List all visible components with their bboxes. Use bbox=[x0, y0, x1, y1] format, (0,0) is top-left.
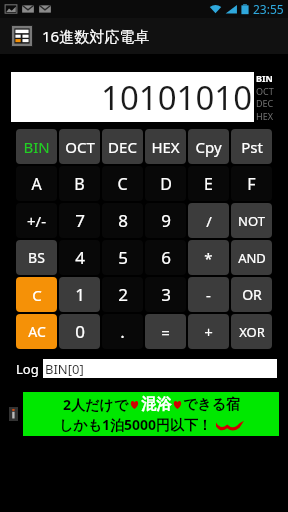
button[interactable]: C bbox=[102, 166, 143, 201]
button[interactable]: Pst bbox=[231, 129, 272, 164]
staticText: 10101010 bbox=[101, 75, 253, 120]
staticText: XOR bbox=[239, 323, 265, 341]
button[interactable]: 8 bbox=[102, 203, 143, 238]
staticText: 9 bbox=[161, 209, 171, 232]
staticText: = bbox=[161, 322, 170, 342]
staticText: HEX bbox=[151, 137, 180, 157]
button[interactable]: BIN[0] bbox=[43, 359, 277, 378]
button[interactable]: D bbox=[145, 166, 186, 201]
staticText: 16進数対応電卓 bbox=[42, 26, 150, 46]
staticText: Log bbox=[16, 360, 39, 378]
staticText: - bbox=[206, 285, 211, 305]
button[interactable]: HEX bbox=[145, 129, 186, 164]
staticText: できる宿 bbox=[183, 396, 240, 414]
button[interactable]: . bbox=[102, 314, 143, 349]
staticText: F bbox=[247, 173, 256, 195]
staticText: . bbox=[120, 320, 125, 343]
button[interactable]: AC bbox=[16, 314, 57, 349]
staticText: OR bbox=[242, 285, 262, 304]
staticText: +/- bbox=[27, 211, 46, 231]
button[interactable]: E bbox=[188, 166, 229, 201]
button[interactable]: 9 bbox=[145, 203, 186, 238]
staticText: + bbox=[204, 322, 213, 342]
button[interactable]: / bbox=[188, 203, 229, 238]
staticText: 7 bbox=[75, 209, 85, 232]
staticText: 3 bbox=[161, 283, 171, 306]
button[interactable]: XOR bbox=[231, 314, 272, 349]
staticText: Pst bbox=[241, 137, 263, 157]
button[interactable]: OR bbox=[231, 277, 272, 312]
button[interactable]: BIN bbox=[16, 129, 57, 164]
staticText: C bbox=[117, 173, 128, 195]
staticText: Cpy bbox=[195, 137, 222, 157]
staticText: 1 bbox=[75, 283, 85, 306]
button[interactable]: 7 bbox=[59, 203, 100, 238]
staticText: 0 bbox=[75, 320, 85, 343]
button[interactable]: Cpy bbox=[188, 129, 229, 164]
staticText: * bbox=[204, 248, 213, 268]
staticText: 5 bbox=[118, 246, 128, 269]
staticText: 混浴 bbox=[141, 395, 171, 414]
button[interactable]: 5 bbox=[102, 240, 143, 275]
staticText: BIN bbox=[256, 72, 273, 84]
staticText: D bbox=[160, 173, 172, 195]
staticText: しかも1泊5000円以下！ bbox=[59, 415, 213, 434]
staticText: AND bbox=[238, 249, 266, 267]
staticText: AC bbox=[28, 322, 46, 341]
button[interactable]: C bbox=[16, 277, 57, 312]
button[interactable]: BS bbox=[16, 240, 57, 275]
button[interactable]: DEC bbox=[102, 129, 143, 164]
staticText: 23:55 bbox=[253, 1, 284, 17]
staticText: BS bbox=[28, 248, 45, 267]
staticText: E bbox=[204, 173, 213, 195]
button[interactable]: NOT bbox=[231, 203, 272, 238]
button[interactable]: - bbox=[188, 277, 229, 312]
staticText: HEX bbox=[256, 110, 273, 122]
button[interactable]: 4 bbox=[59, 240, 100, 275]
button[interactable]: Advertisement banner bbox=[23, 392, 279, 436]
button[interactable]: F bbox=[231, 166, 272, 201]
staticText: 8 bbox=[118, 209, 128, 232]
button[interactable]: B bbox=[59, 166, 100, 201]
button[interactable]: * bbox=[188, 240, 229, 275]
button[interactable]: 6 bbox=[145, 240, 186, 275]
staticText: 4 bbox=[75, 246, 85, 269]
staticText: BIN[0] bbox=[45, 360, 84, 378]
staticText: NOT bbox=[238, 212, 265, 230]
staticText: / bbox=[206, 211, 212, 231]
staticText: DEC bbox=[108, 137, 137, 157]
button[interactable]: 3 bbox=[145, 277, 186, 312]
staticText: OCT bbox=[65, 137, 95, 157]
staticText: BIN bbox=[23, 137, 50, 157]
button[interactable]: A bbox=[16, 166, 57, 201]
button[interactable]: 2 bbox=[102, 277, 143, 312]
button[interactable]: = bbox=[145, 314, 186, 349]
staticText: B bbox=[74, 173, 85, 195]
button[interactable]: +/- bbox=[16, 203, 57, 238]
staticText: OCT bbox=[256, 85, 274, 97]
staticText: A bbox=[31, 173, 42, 195]
staticText: C bbox=[32, 285, 42, 305]
button[interactable]: AND bbox=[231, 240, 272, 275]
button[interactable]: OCT bbox=[59, 129, 100, 164]
button[interactable]: + bbox=[188, 314, 229, 349]
button[interactable]: 0 bbox=[59, 314, 100, 349]
staticText: 6 bbox=[161, 246, 171, 269]
staticText: 2人だけで bbox=[63, 395, 128, 414]
button[interactable]: 1 bbox=[59, 277, 100, 312]
staticText: DEC bbox=[256, 97, 274, 109]
staticText: 2 bbox=[118, 283, 128, 306]
